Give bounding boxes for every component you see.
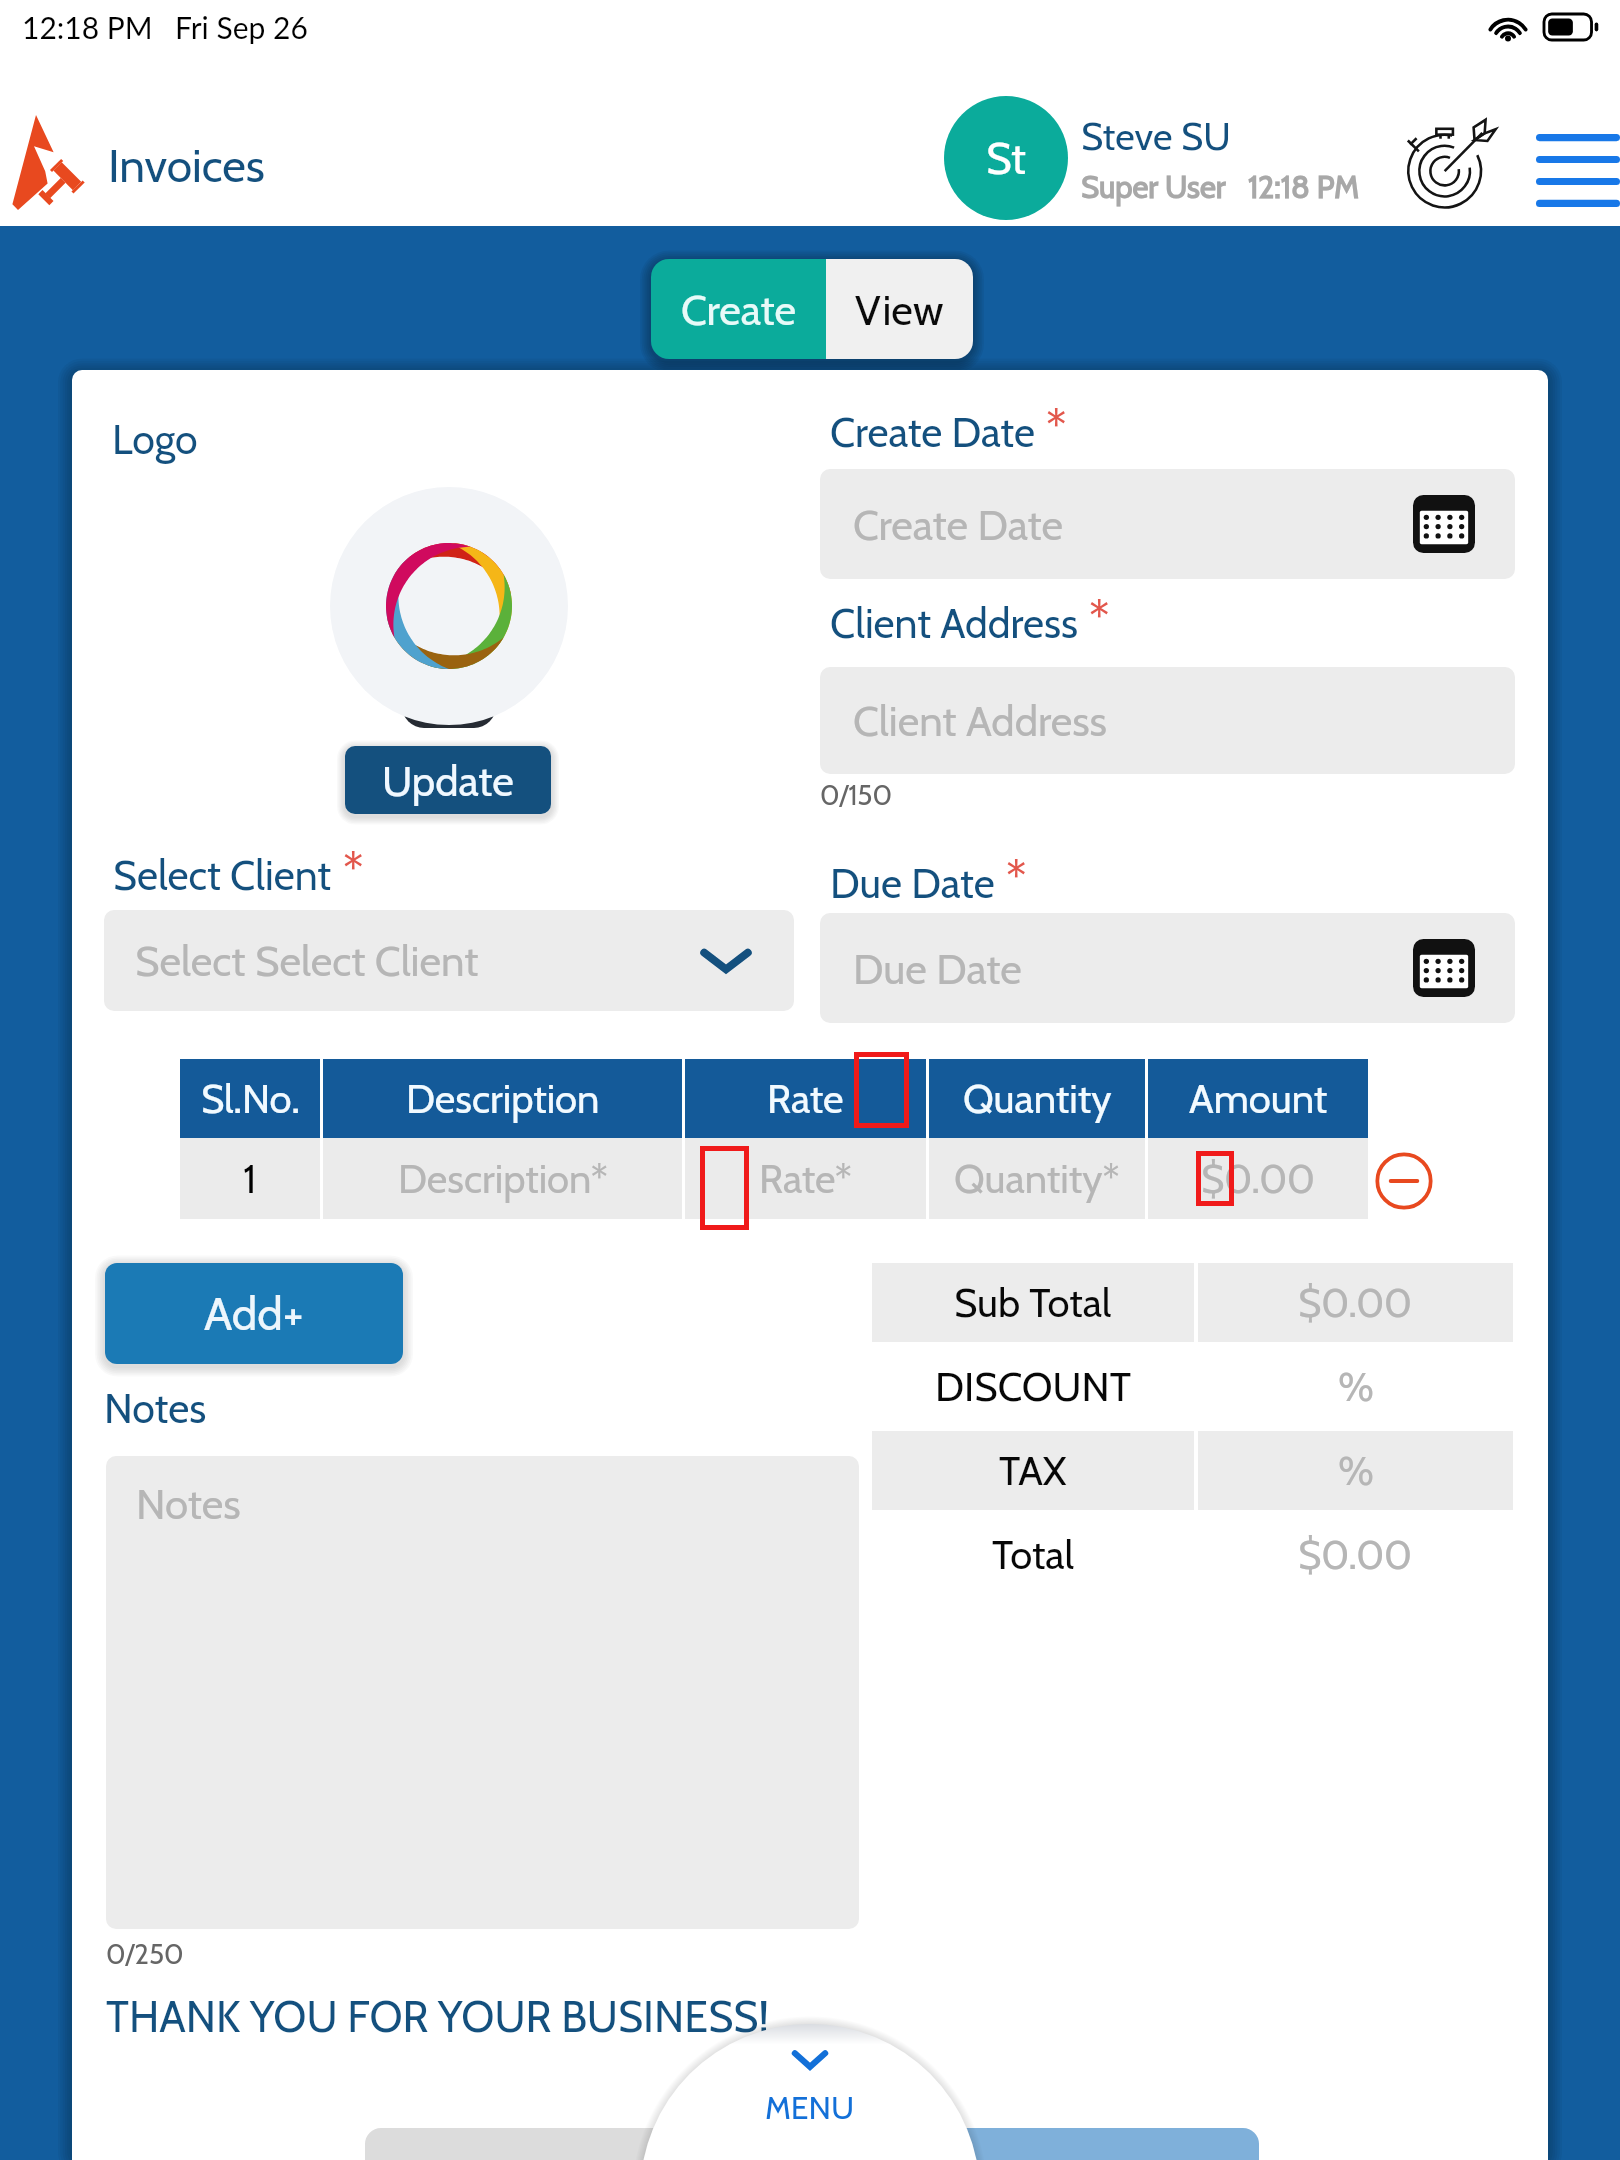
staticText: 1: [243, 1154, 257, 1203]
staticText: *: [1006, 849, 1027, 907]
staticText: Client Address: [830, 598, 1078, 648]
staticText: 12:18 PM: [22, 9, 153, 45]
staticText: Create Date: [830, 407, 1035, 457]
staticText: Description*: [398, 1154, 608, 1203]
staticText: Create: [681, 284, 797, 335]
staticText: Add+: [204, 1286, 304, 1342]
staticText: *: [343, 841, 364, 899]
staticText: Client Address: [853, 695, 1107, 746]
staticText: 12:18 PM: [1248, 168, 1360, 206]
button[interactable]: St: [944, 96, 1068, 220]
staticText: Invoices: [108, 138, 265, 194]
button[interactable]: MENU: [640, 2024, 980, 2160]
staticText: THANK YOU FOR YOUR BUSINESS!: [106, 1991, 769, 2043]
staticText: St: [986, 132, 1026, 185]
button[interactable]: Client Address: [820, 667, 1515, 774]
staticText: 0/150: [820, 778, 893, 812]
staticText: Due Date: [853, 943, 1022, 994]
staticText: *: [1089, 589, 1110, 647]
button[interactable]: Targets: [1406, 118, 1498, 208]
staticText: %: [1338, 1362, 1374, 1411]
staticText: Rate*: [759, 1154, 852, 1203]
staticText: Sub Total: [954, 1278, 1112, 1327]
staticText: 0/250: [106, 1937, 184, 1971]
staticText: *: [1046, 398, 1067, 456]
staticText: Quantity*: [954, 1154, 1120, 1203]
staticText: View: [855, 284, 944, 335]
staticText: Fri Sep 26: [175, 9, 308, 45]
staticText: Quantity: [963, 1074, 1112, 1123]
button[interactable]: Update: [345, 746, 551, 814]
staticText: TAX: [999, 1446, 1067, 1495]
staticText: DISCOUNT: [935, 1362, 1131, 1411]
staticText: Sl.No.: [201, 1074, 300, 1123]
staticText: Total: [992, 1530, 1074, 1579]
staticText: Description: [406, 1074, 600, 1123]
button[interactable]: Cancel: [365, 2128, 785, 2160]
staticText: Notes: [136, 1478, 241, 1529]
button[interactable]: View: [826, 259, 973, 359]
button[interactable]: Due Date: [820, 913, 1515, 1023]
staticText: Logo: [112, 414, 198, 464]
button[interactable]: Create Date: [820, 469, 1515, 579]
button[interactable]: Remove row: [1375, 1152, 1433, 1210]
staticText: Rate: [767, 1074, 844, 1123]
staticText: $0.00: [1298, 1530, 1413, 1579]
staticText: Update: [382, 755, 514, 806]
staticText: %: [1338, 1446, 1374, 1495]
staticText: Select Select Client: [135, 935, 479, 986]
button[interactable]: Create: [651, 259, 826, 359]
staticText: MENU: [765, 2088, 855, 2127]
button[interactable]: Select Select Client: [104, 910, 794, 1011]
button[interactable]: Add+: [105, 1263, 403, 1364]
staticText: Notes: [104, 1383, 207, 1433]
button[interactable]: Open navigation menu: [1536, 134, 1620, 207]
staticText: Select Client: [113, 850, 332, 900]
staticText: Amount: [1189, 1074, 1328, 1123]
button[interactable]: Save: [839, 2128, 1259, 2160]
staticText: Create Date: [853, 499, 1063, 550]
staticText: Due Date: [830, 858, 995, 908]
staticText: Steve SU: [1081, 113, 1231, 159]
staticText: $0.00: [1298, 1278, 1413, 1327]
staticText: $0.00: [1201, 1154, 1316, 1203]
staticText: Super User: [1081, 168, 1226, 206]
